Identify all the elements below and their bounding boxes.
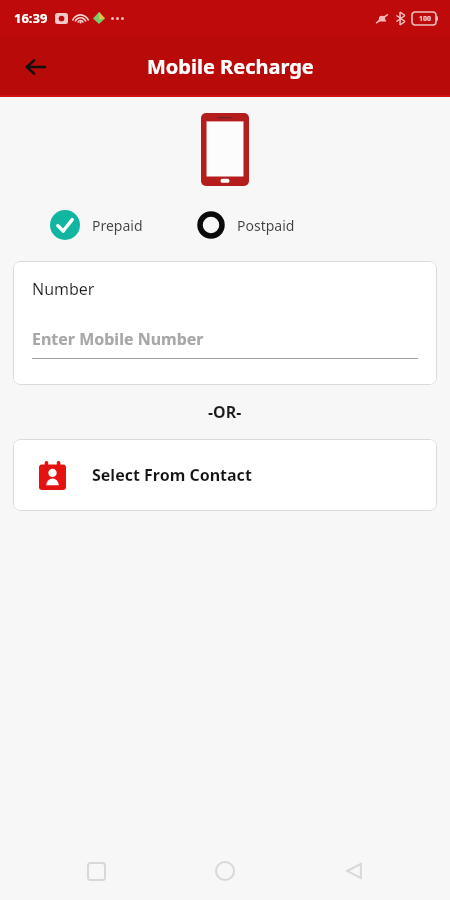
button[interactable]: Prepaid	[50, 210, 143, 240]
staticText: -OR-	[208, 401, 242, 423]
staticText: 100	[419, 14, 432, 24]
button[interactable]: Number	[13, 261, 437, 385]
button[interactable]: Back	[14, 45, 58, 89]
button[interactable]: Recent apps	[72, 847, 120, 895]
button[interactable]: Back	[330, 847, 378, 895]
button[interactable]: Postpaid	[197, 211, 295, 239]
button[interactable]: Select From Contact	[13, 439, 437, 511]
staticText: Postpaid	[237, 216, 295, 235]
staticText: Number	[32, 278, 95, 300]
staticText: Mobile Recharge	[147, 53, 314, 80]
staticText: Select From Contact	[92, 464, 252, 486]
staticText: Enter Mobile Number	[32, 328, 204, 350]
staticText: Prepaid	[92, 216, 143, 235]
button[interactable]: Home	[201, 847, 249, 895]
staticText: 16:39	[14, 9, 48, 27]
